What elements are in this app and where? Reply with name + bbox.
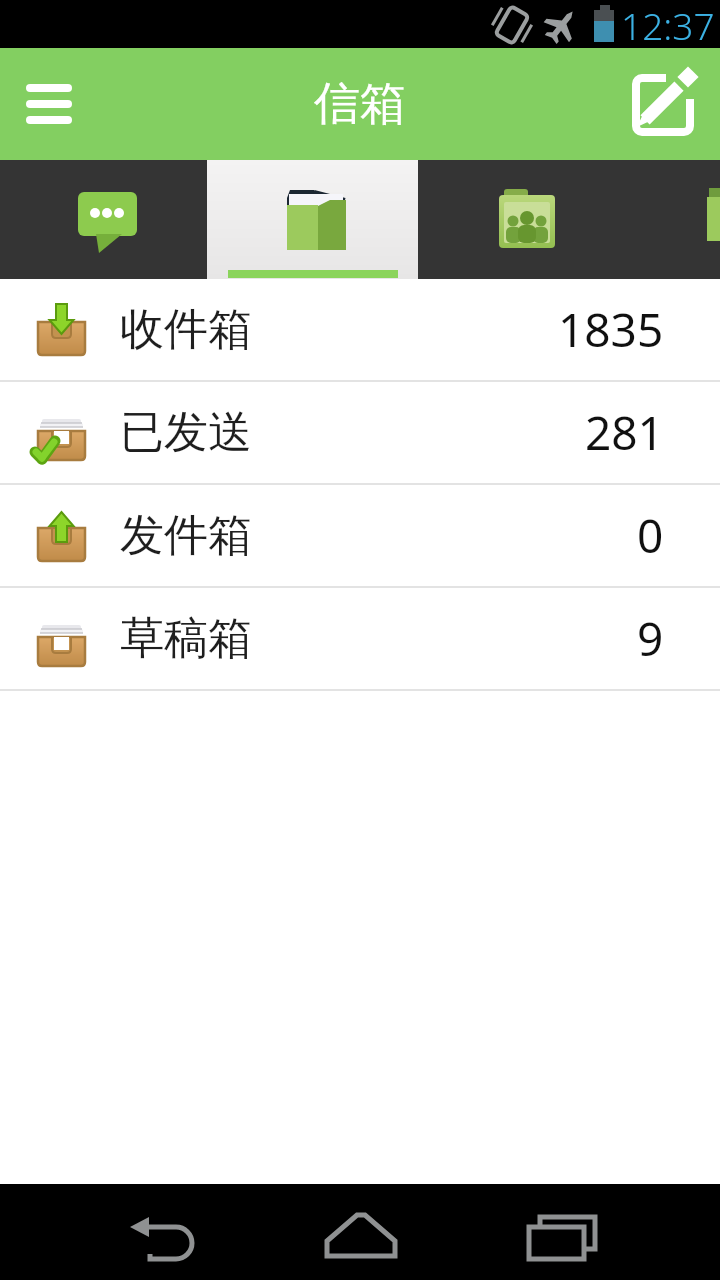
staticText: 发件箱 [120,508,252,563]
button[interactable] [610,48,720,160]
button[interactable] [240,1184,480,1280]
staticText: 1835 [558,298,664,361]
button[interactable] [0,160,208,279]
button[interactable] [0,48,112,160]
button[interactable] [208,160,419,279]
button[interactable]: 发件箱 [0,485,720,586]
staticText: 0 [637,504,664,567]
staticText: 281 [585,401,664,464]
staticText: 信箱 [314,75,406,133]
staticText: 草稿箱 [120,611,252,666]
button[interactable] [480,1184,720,1280]
staticText: 收件箱 [120,302,252,357]
staticText: 已发送 [120,405,252,460]
button[interactable]: 已发送 [0,382,720,483]
button[interactable]: 草稿箱 [0,588,720,689]
staticText: 12:37 [621,0,715,48]
button[interactable]: 收件箱 [0,279,720,380]
button[interactable] [630,160,720,279]
button[interactable] [0,1184,240,1280]
button[interactable] [419,160,630,279]
staticText: 9 [637,607,664,670]
